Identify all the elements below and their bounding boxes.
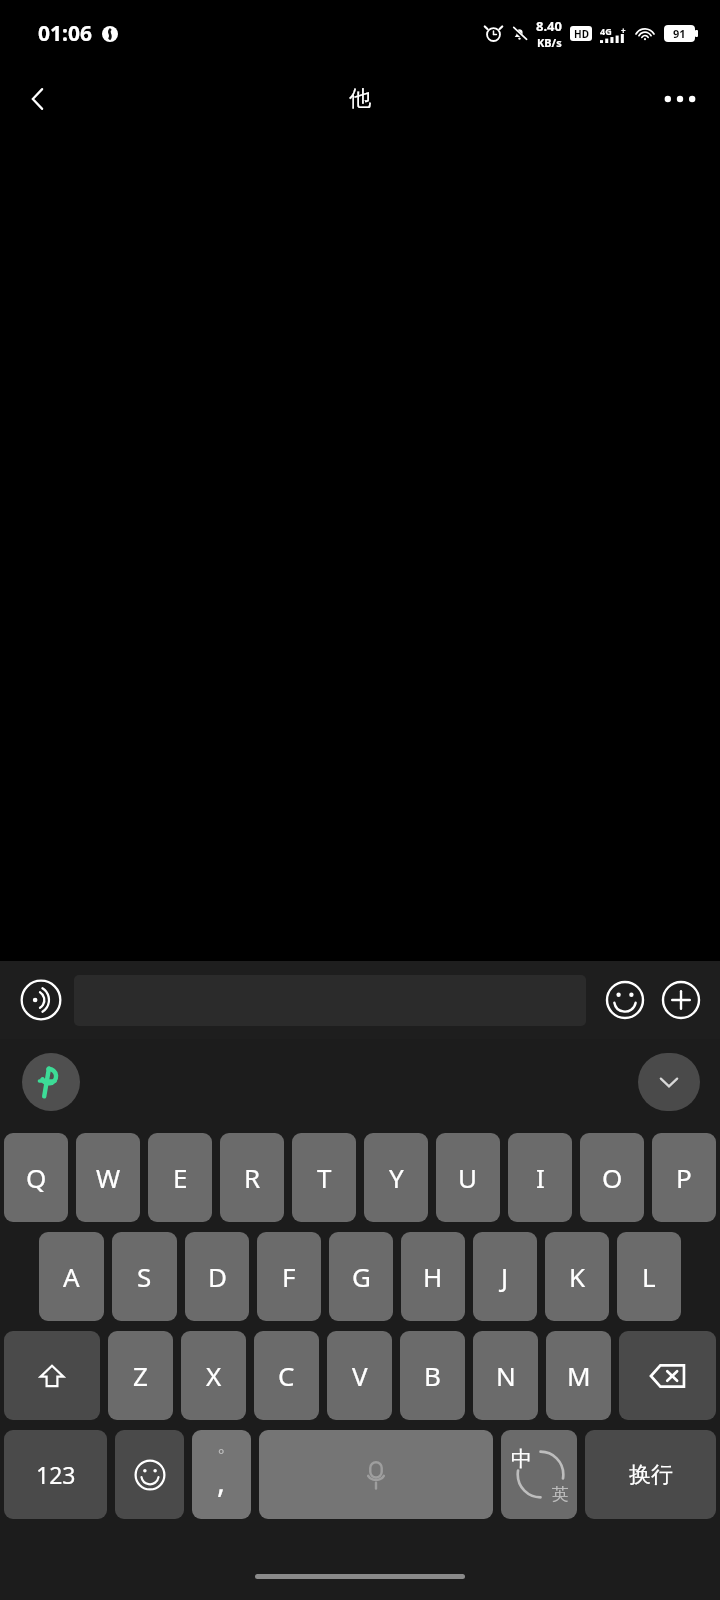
staticText: 01:06 [38, 19, 92, 48]
staticText: 英 [552, 1484, 569, 1505]
staticText: HD [574, 27, 589, 41]
button[interactable]: More actions [656, 975, 706, 1025]
staticText: Z [133, 1358, 148, 1393]
staticText: 91 [673, 26, 686, 41]
button[interactable]: J [473, 1232, 537, 1321]
staticText: + [621, 25, 626, 36]
button[interactable]: Back [10, 71, 66, 127]
staticText: F [282, 1259, 296, 1294]
staticText: D [208, 1259, 227, 1294]
button[interactable]: G [329, 1232, 393, 1321]
button[interactable]: 123 [4, 1430, 107, 1519]
button[interactable]: C [254, 1331, 319, 1420]
staticText: B [424, 1358, 441, 1393]
button[interactable]: N [473, 1331, 538, 1420]
staticText: Q [26, 1160, 47, 1195]
staticText: I [536, 1160, 545, 1195]
button[interactable]: Space [259, 1430, 493, 1519]
button[interactable]: O [580, 1133, 644, 1222]
button[interactable]: Hide keyboard [638, 1053, 700, 1111]
button[interactable]: D [185, 1232, 249, 1321]
staticText: T [317, 1160, 332, 1195]
button[interactable]: E [148, 1133, 212, 1222]
button[interactable]: P [652, 1133, 716, 1222]
staticText: M [567, 1358, 591, 1393]
button[interactable]: Emoji keyboard [115, 1430, 184, 1519]
staticText: 换行 [629, 1461, 673, 1489]
button[interactable]: Switch Chinese English [501, 1430, 577, 1519]
button[interactable]: W [76, 1133, 140, 1222]
button[interactable]: A [39, 1232, 104, 1321]
button[interactable]: Y [364, 1133, 428, 1222]
button[interactable]: ° [192, 1430, 251, 1519]
button[interactable]: I [508, 1133, 572, 1222]
staticText: O [602, 1160, 623, 1195]
staticText: KB/s [537, 35, 562, 50]
staticText: J [501, 1259, 509, 1294]
button[interactable]: Emoji [600, 975, 650, 1025]
staticText: K [569, 1259, 586, 1294]
staticText: 123 [36, 1459, 76, 1490]
button[interactable]: T [292, 1133, 356, 1222]
button[interactable]: B [400, 1331, 465, 1420]
staticText: W [96, 1160, 121, 1195]
button[interactable]: U [436, 1133, 500, 1222]
staticText: U [458, 1160, 478, 1195]
button[interactable]: H [401, 1232, 465, 1321]
staticText: P [676, 1160, 692, 1195]
staticText: E [173, 1160, 188, 1195]
button[interactable]: Z [108, 1331, 173, 1420]
staticText: R [244, 1160, 261, 1195]
button[interactable]: S [112, 1232, 177, 1321]
staticText: A [63, 1259, 80, 1294]
staticText: Y [389, 1160, 404, 1195]
button[interactable]: Shift [4, 1331, 100, 1420]
staticText: C [278, 1358, 295, 1393]
button[interactable]: M [546, 1331, 611, 1420]
button[interactable]: Input method settings [22, 1053, 80, 1111]
button[interactable]: K [545, 1232, 609, 1321]
button[interactable]: F [257, 1232, 321, 1321]
button[interactable]: Voice message [14, 973, 68, 1027]
staticText: 4G [600, 25, 612, 37]
staticText: G [352, 1259, 371, 1294]
staticText: 8.40 [536, 17, 562, 35]
staticText: ° [218, 1444, 225, 1464]
button[interactable]: Q [4, 1133, 68, 1222]
button[interactable]: L [617, 1232, 681, 1321]
staticText: S [137, 1259, 152, 1294]
button[interactable]: Backspace [619, 1331, 716, 1420]
staticText: 中 [511, 1446, 532, 1472]
button[interactable]: R [220, 1133, 284, 1222]
staticText: V [352, 1358, 368, 1393]
staticText: X [206, 1358, 222, 1393]
staticText: L [642, 1259, 656, 1294]
staticText: , [217, 1461, 226, 1502]
button[interactable]: X [181, 1331, 246, 1420]
button[interactable]: V [327, 1331, 392, 1420]
staticText: N [496, 1358, 516, 1393]
button[interactable]: 换行 [585, 1430, 716, 1519]
staticText: 他 [349, 85, 371, 113]
staticText: H [423, 1259, 443, 1294]
button[interactable]: More options [652, 71, 708, 127]
